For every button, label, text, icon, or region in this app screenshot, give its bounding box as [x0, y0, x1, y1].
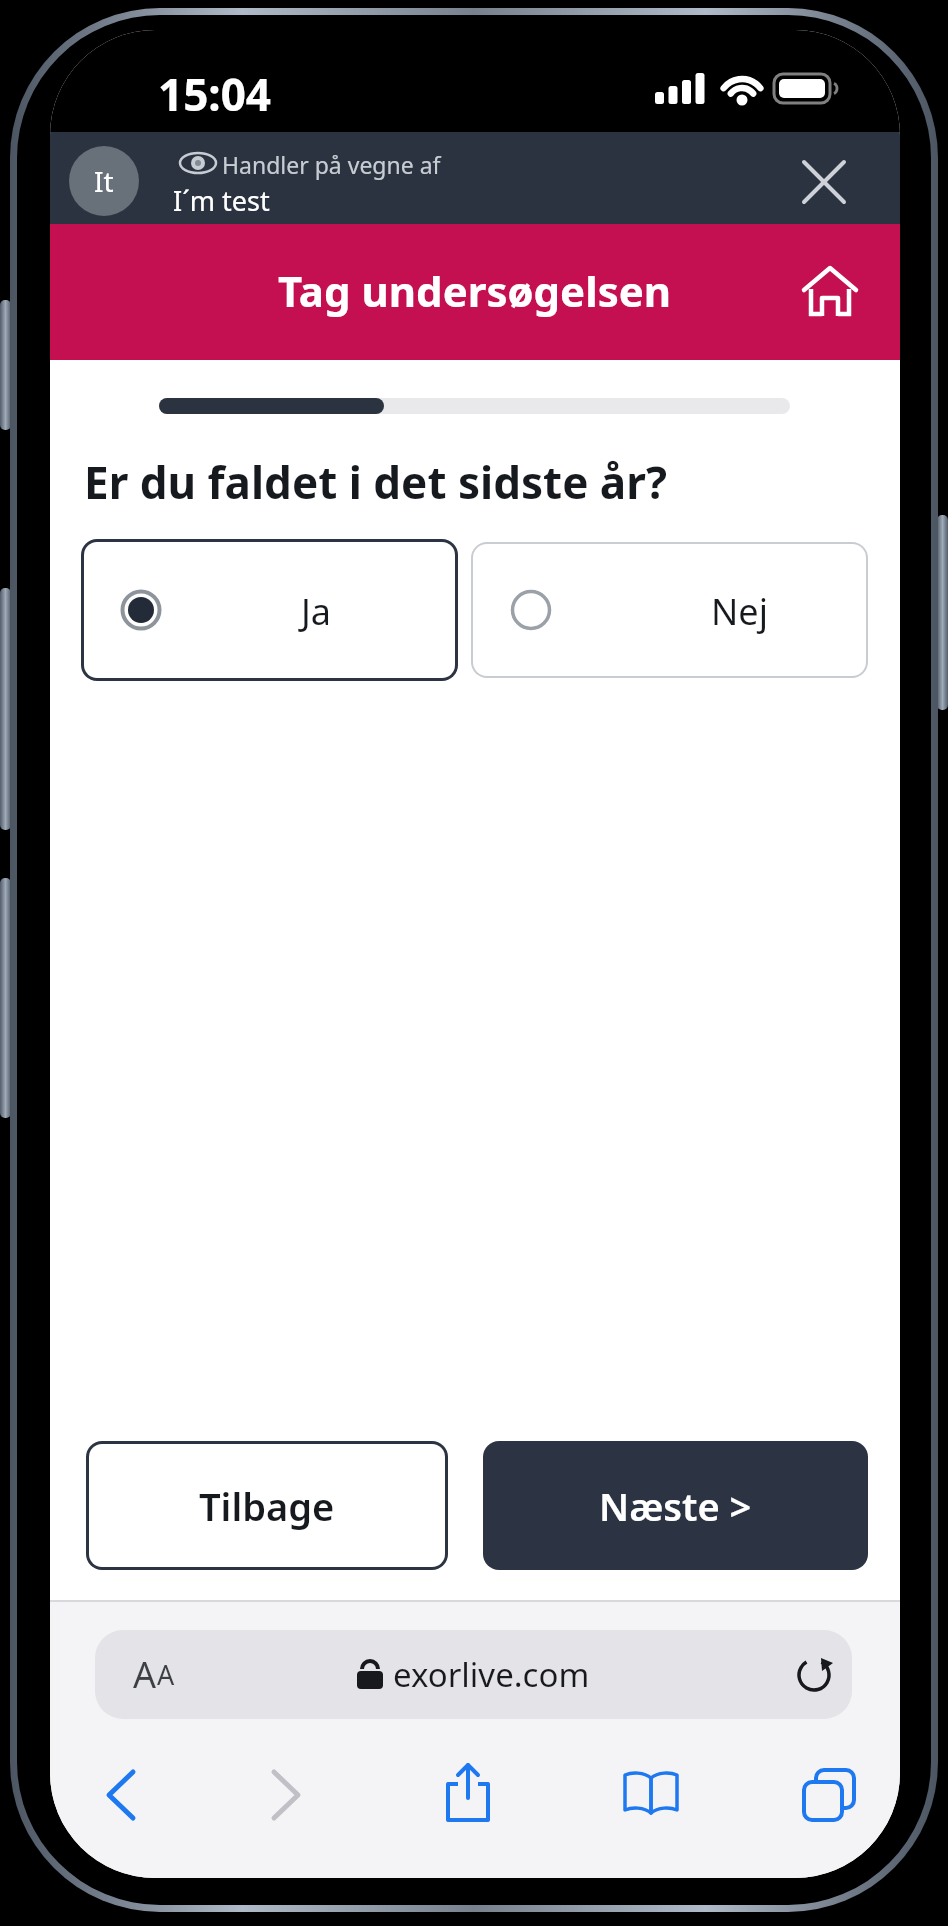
- staticText: Ja: [301, 587, 332, 636]
- staticText: A: [133, 1650, 157, 1699]
- staticText: Næste >: [599, 1480, 752, 1532]
- button[interactable]: [268, 1768, 302, 1822]
- staticText: exorlive.com: [393, 1652, 590, 1697]
- staticText: 15:04: [158, 64, 272, 124]
- button[interactable]: [800, 1766, 858, 1824]
- staticText: Handler på vegne af: [222, 149, 441, 180]
- button[interactable]: [804, 162, 844, 202]
- staticText: Er du faldet i det sidste år?: [84, 452, 667, 512]
- button[interactable]: [440, 1762, 496, 1826]
- staticText: It: [94, 162, 114, 200]
- staticText: A: [157, 1656, 175, 1693]
- button[interactable]: Ja: [81, 539, 458, 681]
- button[interactable]: Tilbage: [86, 1441, 448, 1570]
- staticText: I´m test: [173, 182, 270, 219]
- button[interactable]: Næste >: [483, 1441, 868, 1570]
- button[interactable]: [802, 264, 858, 320]
- button[interactable]: It: [69, 146, 139, 216]
- button[interactable]: [795, 1656, 833, 1694]
- staticText: Tag undersøgelsen: [278, 262, 672, 319]
- button[interactable]: Nej: [471, 542, 868, 678]
- staticText: Nej: [711, 587, 768, 636]
- button[interactable]: [622, 1770, 680, 1820]
- button[interactable]: A: [95, 1630, 852, 1719]
- button[interactable]: [105, 1768, 139, 1822]
- staticText: Tilbage: [199, 1480, 335, 1532]
